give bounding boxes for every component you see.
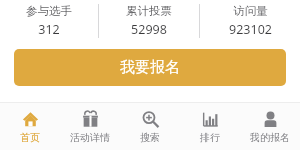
staticText: 312 [38, 21, 60, 38]
staticText: 52998 [131, 21, 167, 38]
staticText: 排行 [200, 131, 220, 144]
staticText: 搜索 [140, 131, 160, 144]
staticText: 923102 [229, 21, 272, 38]
staticText: 访问量 [233, 4, 268, 18]
button[interactable]: 我要报名 [14, 49, 286, 86]
button[interactable]: 排行 [180, 103, 240, 150]
staticText: 累计投票 [126, 4, 172, 18]
staticText: 我要报名 [120, 58, 180, 77]
staticText: 首页 [20, 131, 40, 144]
staticText: 活动详情 [70, 131, 110, 144]
button[interactable]: 我的报名 [240, 103, 300, 150]
staticText: 参与选手 [26, 4, 72, 18]
button[interactable]: 搜索 [120, 103, 180, 150]
staticText: 我的报名 [250, 131, 290, 144]
button[interactable]: 活动详情 [60, 103, 120, 150]
button[interactable]: 首页 [0, 103, 60, 150]
